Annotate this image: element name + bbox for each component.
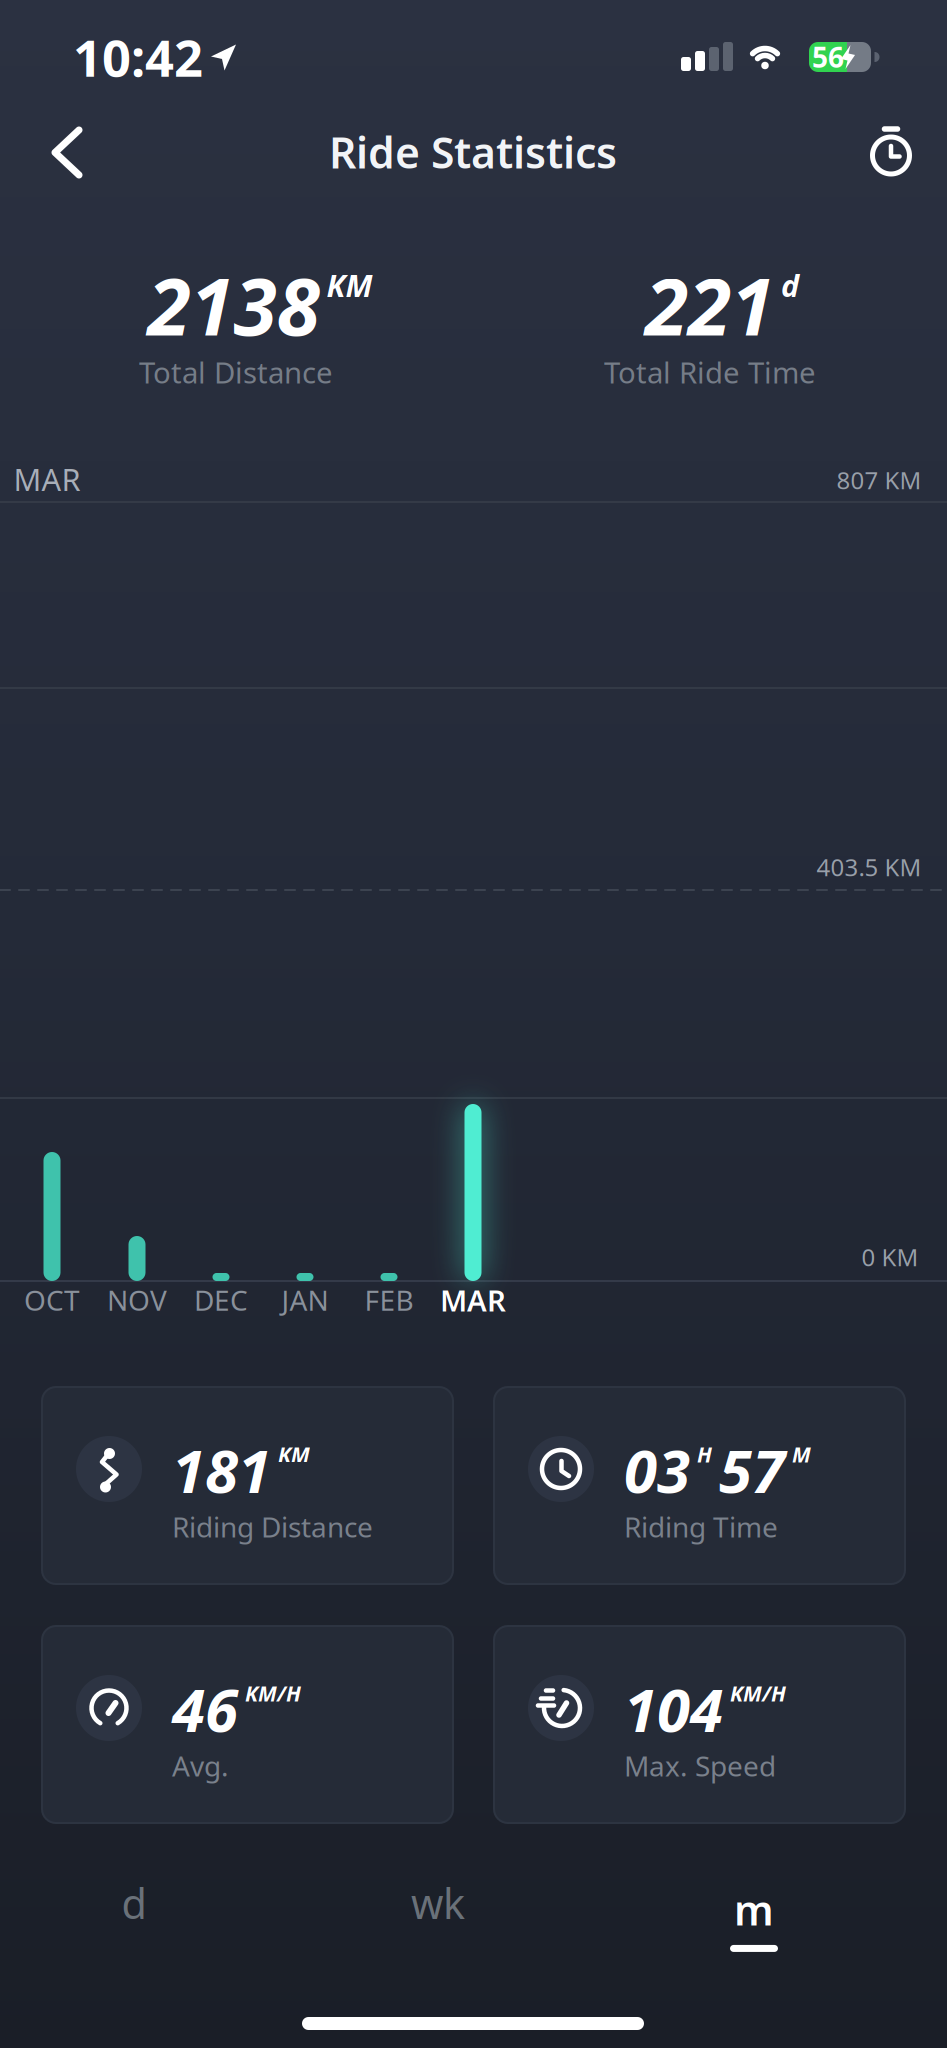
- staticText: Total Ride Time: [604, 352, 816, 391]
- staticText: KM/H: [730, 1679, 786, 1707]
- staticText: 03: [624, 1430, 690, 1510]
- button[interactable]: d: [64, 1863, 204, 1943]
- staticText: FEB: [364, 1281, 413, 1319]
- staticText: NOV: [107, 1281, 167, 1319]
- staticText: 46: [172, 1669, 238, 1749]
- staticText: 2138: [147, 253, 319, 357]
- button[interactable]: NOV: [77, 1276, 197, 1324]
- button[interactable]: Ride time history: [863, 122, 919, 178]
- staticText: d: [781, 265, 799, 305]
- staticText: 104: [624, 1669, 723, 1749]
- staticText: Avg.: [172, 1747, 229, 1784]
- staticText: KM/H: [245, 1679, 301, 1707]
- staticText: H: [697, 1440, 712, 1468]
- button[interactable]: OCT: [0, 1276, 112, 1324]
- staticText: 403.5 KM: [816, 851, 921, 883]
- staticText: Max. Speed: [624, 1747, 776, 1784]
- staticText: 0 KM: [861, 1241, 918, 1273]
- staticText: OCT: [24, 1281, 80, 1319]
- button[interactable]: FEB: [329, 1276, 449, 1324]
- staticText: wk: [411, 1876, 465, 1930]
- staticText: 10:42: [73, 23, 203, 91]
- staticText: Ride Statistics: [329, 124, 617, 180]
- staticText: 807 KM: [836, 464, 921, 496]
- staticText: m: [734, 1882, 774, 1937]
- staticText: 221: [645, 253, 774, 357]
- staticText: DEC: [194, 1281, 248, 1319]
- staticText: Total Distance: [139, 352, 333, 391]
- button[interactable]: JAN: [245, 1276, 365, 1324]
- button[interactable]: Back: [51, 126, 83, 179]
- staticText: d: [121, 1876, 146, 1930]
- button[interactable]: DEC: [161, 1276, 281, 1324]
- staticText: 57: [719, 1430, 785, 1510]
- staticText: Riding Time: [624, 1508, 778, 1545]
- staticText: MAR: [13, 459, 80, 499]
- button[interactable]: MAR: [413, 1276, 533, 1324]
- button[interactable]: wk: [368, 1863, 508, 1943]
- staticText: 56: [812, 38, 844, 76]
- staticText: Riding Distance: [172, 1508, 373, 1545]
- staticText: M: [792, 1440, 811, 1468]
- staticText: KM: [326, 265, 372, 305]
- staticText: MAR: [440, 1280, 506, 1319]
- staticText: JAN: [281, 1281, 328, 1319]
- staticText: 181: [172, 1430, 271, 1510]
- button[interactable]: m: [684, 1862, 824, 1972]
- staticText: KM: [278, 1440, 310, 1468]
